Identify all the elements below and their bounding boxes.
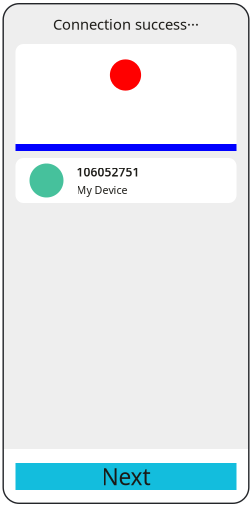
staticText: 106052751 bbox=[76, 164, 139, 180]
staticText: Connection success··· bbox=[53, 14, 199, 34]
staticText: Next bbox=[101, 461, 150, 491]
button[interactable]: 106052751 bbox=[15, 158, 236, 203]
staticText: My Device bbox=[76, 183, 127, 197]
